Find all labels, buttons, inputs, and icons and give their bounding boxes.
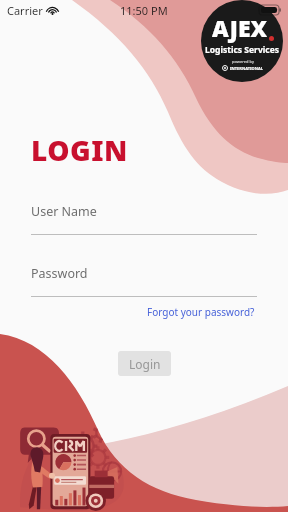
- button[interactable]: Forgot your password?: [145, 303, 257, 321]
- staticText: AJEX: [212, 12, 268, 43]
- button[interactable]: Login: [118, 351, 171, 376]
- button[interactable]: AJEX Logistics Services logo: [201, 0, 283, 82]
- staticText: Password: [31, 265, 88, 282]
- staticText: Logistics Services: [205, 44, 280, 56]
- button[interactable]: Password: [31, 265, 257, 297]
- staticText: Login: [129, 356, 161, 372]
- staticText: powered by: [232, 59, 254, 64]
- staticText: 11:50 PM: [120, 3, 168, 18]
- staticText: LOGIN: [31, 131, 128, 169]
- staticText: Carrier: [7, 3, 43, 18]
- staticText: Forgot your password?: [147, 305, 255, 319]
- button[interactable]: User Name: [31, 203, 257, 235]
- staticText: INTERNATIONAL: [230, 66, 264, 71]
- staticText: User Name: [31, 203, 97, 220]
